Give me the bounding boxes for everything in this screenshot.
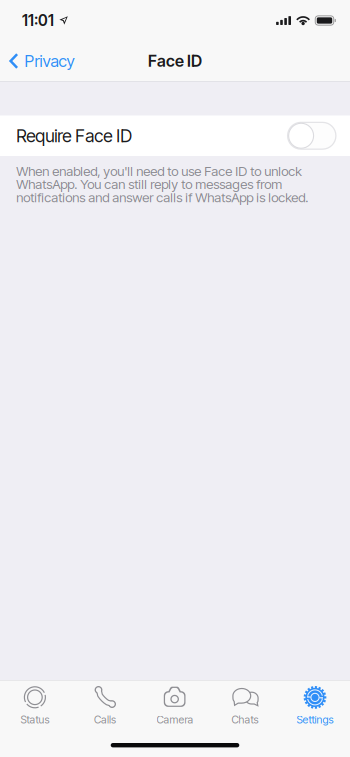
staticText: Require Face ID <box>16 125 132 146</box>
button[interactable]: Chats <box>210 680 280 728</box>
staticText: Chats <box>231 713 258 726</box>
button[interactable]: Require Face ID <box>0 115 350 156</box>
button[interactable]: Calls <box>70 680 140 728</box>
staticText: Calls <box>94 713 116 726</box>
staticText: Face ID <box>148 51 202 71</box>
staticText: When enabled, you'll need to use Face ID… <box>16 163 308 205</box>
button[interactable]: Camera <box>140 680 210 728</box>
staticText: Settings <box>296 713 333 726</box>
staticText: Status <box>20 713 49 726</box>
button[interactable]: Status <box>0 680 70 728</box>
staticText: 11:01 <box>22 11 54 30</box>
staticText: Privacy <box>25 51 75 71</box>
staticText: Camera <box>156 713 193 726</box>
button[interactable]: Settings <box>280 680 350 728</box>
button[interactable]: Privacy <box>0 41 87 81</box>
